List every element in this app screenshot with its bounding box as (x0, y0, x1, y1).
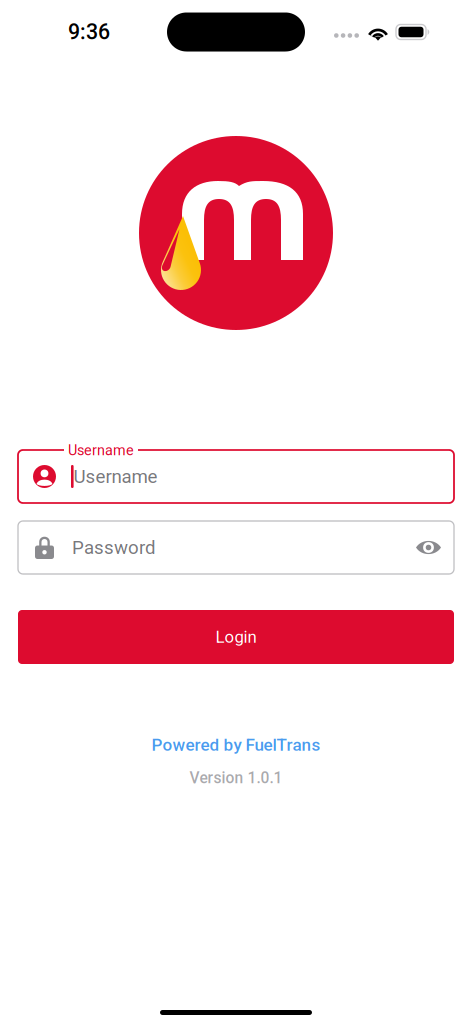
staticText: Username (68, 442, 134, 459)
staticText: Username (74, 466, 158, 487)
button[interactable]: Login (18, 610, 454, 664)
staticText: 9:36 (68, 19, 110, 44)
staticText: Password (72, 537, 156, 558)
button[interactable]: Password (18, 521, 454, 574)
staticText: Login (215, 627, 256, 647)
staticText: Powered by FuelTrans (151, 735, 320, 755)
button[interactable]: Username (18, 450, 454, 503)
staticText: Version 1.0.1 (189, 769, 282, 787)
button[interactable]: Powered by FuelTrans (151, 734, 320, 756)
